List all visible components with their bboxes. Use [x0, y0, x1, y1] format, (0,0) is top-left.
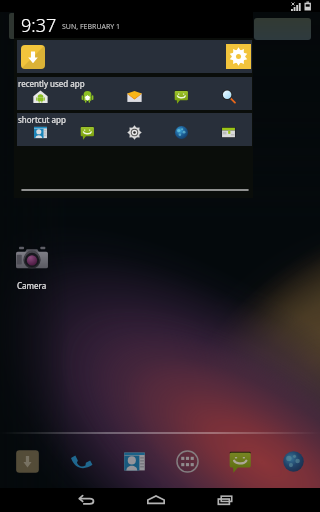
button[interactable]: recently used app — [17, 77, 252, 110]
button[interactable]: Back — [74, 488, 98, 512]
button[interactable]: App 2 — [79, 124, 96, 141]
button[interactable]: App 1 — [32, 124, 49, 141]
button[interactable]: Download manager — [21, 45, 45, 69]
button[interactable]: Phone — [68, 448, 95, 475]
button[interactable]: App 1 — [32, 88, 49, 105]
button[interactable]: All apps — [174, 448, 201, 475]
button[interactable]: Recents — [214, 488, 238, 512]
button[interactable]: Download manager — [17, 40, 252, 73]
button[interactable]: shortcut app — [17, 113, 252, 146]
button[interactable]: Browser — [280, 448, 307, 475]
button[interactable]: App 4 — [173, 124, 190, 141]
button[interactable]: App 4 — [173, 88, 190, 105]
staticText: 9:37 — [21, 13, 57, 38]
staticText: SUN, FEBRUARY 1 — [62, 22, 121, 32]
button[interactable]: Messaging — [227, 448, 254, 475]
button[interactable]: Home — [144, 488, 168, 512]
staticText: shortcut app — [18, 114, 66, 125]
button[interactable]: App 3 — [126, 124, 143, 141]
button[interactable]: People — [121, 448, 148, 475]
button[interactable]: Camera — [9, 241, 54, 291]
staticText: recently used app — [18, 78, 85, 89]
button[interactable]: App 5 — [220, 88, 237, 105]
button[interactable]: App 3 — [126, 88, 143, 105]
button[interactable]: App 5 — [220, 124, 237, 141]
button[interactable]: Downloads — [14, 448, 41, 475]
staticText: Camera — [17, 280, 47, 291]
button[interactable]: Settings — [226, 44, 251, 69]
button[interactable]: App 2 — [79, 88, 96, 105]
